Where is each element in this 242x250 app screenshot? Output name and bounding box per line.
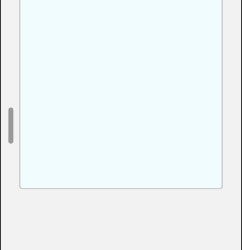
button[interactable]: Scroll bar bbox=[6, 106, 16, 145]
button[interactable]: Content card bbox=[19, 0, 223, 189]
